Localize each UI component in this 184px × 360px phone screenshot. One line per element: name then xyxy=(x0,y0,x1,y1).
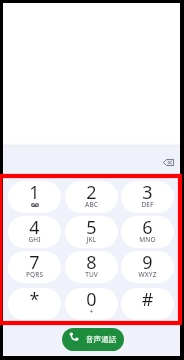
button[interactable]: 8 xyxy=(65,251,118,283)
button[interactable]: Backspace xyxy=(157,152,179,172)
button[interactable]: 3 xyxy=(121,181,174,213)
button[interactable]: 6 xyxy=(121,216,174,248)
staticText: PQRS xyxy=(8,270,61,279)
staticText: 音声通話 xyxy=(86,335,117,345)
staticText: 5 xyxy=(65,216,118,240)
button[interactable]: 2 xyxy=(65,181,118,213)
staticText: 1 xyxy=(8,181,61,205)
staticText: WXYZ xyxy=(121,270,174,279)
staticText: # xyxy=(121,288,174,312)
button[interactable]: 5 xyxy=(65,216,118,248)
staticText: 0 xyxy=(65,288,118,312)
staticText: 9 xyxy=(121,251,174,275)
button[interactable]: 1 xyxy=(8,181,61,213)
staticText: 6 xyxy=(121,216,174,240)
staticText: 4 xyxy=(8,216,61,240)
staticText: 2 xyxy=(65,181,118,205)
staticText: * xyxy=(8,288,61,312)
staticText: JKL xyxy=(65,235,118,244)
button[interactable]: 9 xyxy=(121,251,174,283)
button[interactable]: 音声通話 xyxy=(62,328,124,351)
staticText: 3 xyxy=(121,181,174,205)
staticText: TUV xyxy=(65,270,118,279)
staticText: 8 xyxy=(65,251,118,275)
button[interactable]: 0 xyxy=(65,288,118,320)
staticText: + xyxy=(65,307,118,316)
button[interactable]: # xyxy=(121,288,174,320)
button[interactable]: 4 xyxy=(8,216,61,248)
button[interactable]: * xyxy=(8,288,61,320)
staticText: GHI xyxy=(8,235,61,244)
staticText: MNO xyxy=(121,235,174,244)
staticText: DEF xyxy=(121,200,174,209)
staticText: 7 xyxy=(8,251,61,275)
button[interactable]: 7 xyxy=(8,251,61,283)
staticText: ABC xyxy=(65,200,118,209)
